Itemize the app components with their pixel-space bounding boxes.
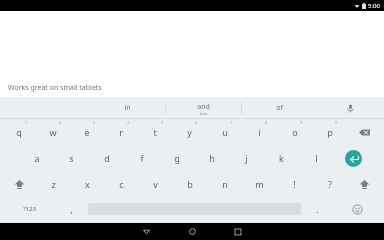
staticText: s <box>69 152 74 164</box>
button[interactable]: Shift <box>2 171 36 197</box>
button[interactable]: f <box>124 145 159 171</box>
button[interactable]: and <box>166 97 241 119</box>
button[interactable]: w <box>36 119 70 145</box>
button[interactable]: y <box>172 119 207 145</box>
staticText: 4 <box>127 120 130 125</box>
staticText: f <box>140 152 144 164</box>
button[interactable]: o <box>277 119 312 145</box>
staticText: y <box>187 126 192 138</box>
staticText: t <box>153 126 157 138</box>
button[interactable]: u <box>207 119 242 145</box>
staticText: w <box>49 126 57 138</box>
button[interactable]: r <box>104 119 138 145</box>
button[interactable]: x <box>70 171 104 197</box>
button[interactable]: e <box>70 119 104 145</box>
button[interactable]: of <box>242 97 317 119</box>
staticText: u <box>222 126 228 138</box>
staticText: a <box>34 152 40 164</box>
button[interactable]: Home <box>177 223 207 240</box>
staticText: , <box>70 203 73 215</box>
button[interactable]: d <box>89 145 124 171</box>
button[interactable]: Back <box>131 223 161 240</box>
button[interactable]: Shift <box>347 171 382 197</box>
button[interactable]: ! <box>277 171 312 197</box>
staticText: i <box>258 126 261 138</box>
button[interactable]: Recents <box>223 223 253 240</box>
staticText: 2 <box>59 120 62 125</box>
staticText: x <box>85 178 90 190</box>
button[interactable]: z <box>36 171 70 197</box>
button[interactable]: . <box>301 197 334 221</box>
button[interactable]: ?123 <box>4 197 55 221</box>
staticText: of <box>276 103 283 113</box>
button[interactable]: Enter <box>334 145 372 171</box>
button[interactable]: c <box>104 171 138 197</box>
button[interactable]: i <box>242 119 277 145</box>
staticText: 7 <box>230 120 233 125</box>
button[interactable]: p <box>312 119 347 145</box>
button[interactable]: t <box>138 119 172 145</box>
staticText: . <box>316 203 319 215</box>
staticText: 0 <box>335 120 338 125</box>
staticText: d <box>104 152 110 164</box>
staticText: b <box>187 178 193 190</box>
button[interactable]: n <box>207 171 242 197</box>
staticText: n <box>222 178 228 190</box>
staticText: ?123 <box>23 205 36 213</box>
staticText: l <box>315 152 318 164</box>
staticText: in <box>124 103 131 113</box>
staticText: m <box>255 178 264 190</box>
button[interactable]: Backspace <box>347 119 382 145</box>
button[interactable]: s <box>54 145 89 171</box>
button[interactable]: h <box>194 145 229 171</box>
button[interactable]: Emoji <box>334 197 380 221</box>
button[interactable]: m <box>242 171 277 197</box>
button[interactable]: g <box>159 145 194 171</box>
staticText: 8 <box>265 120 268 125</box>
staticText: r <box>119 126 123 138</box>
staticText: k <box>279 152 284 164</box>
button[interactable]: Voice input <box>317 97 384 119</box>
button[interactable]: j <box>229 145 264 171</box>
staticText: 9 <box>300 120 303 125</box>
staticText: 5 <box>161 120 164 125</box>
button[interactable]: q <box>2 119 36 145</box>
staticText: Works great on small tablets <box>8 83 102 93</box>
button[interactable]: a <box>19 145 54 171</box>
button[interactable]: b <box>172 171 207 197</box>
staticText: q <box>16 126 22 138</box>
staticText: and <box>197 102 210 112</box>
staticText: 5:00 <box>368 2 380 10</box>
button[interactable]: l <box>299 145 334 171</box>
staticText: j <box>245 152 248 164</box>
staticText: p <box>327 126 333 138</box>
staticText: c <box>119 178 124 190</box>
button[interactable]: , <box>55 197 88 221</box>
staticText: z <box>51 178 56 190</box>
staticText: o <box>292 126 298 138</box>
staticText: v <box>153 178 158 190</box>
button[interactable]: k <box>264 145 299 171</box>
staticText: 3 <box>93 120 96 125</box>
button[interactable]: in <box>90 97 165 119</box>
staticText: ? <box>328 178 332 190</box>
staticText: ! <box>293 178 296 190</box>
staticText: 1 <box>25 120 28 125</box>
staticText: h <box>209 152 215 164</box>
staticText: e <box>84 126 90 138</box>
button[interactable]: v <box>138 171 172 197</box>
button[interactable]: ? <box>312 171 347 197</box>
staticText: g <box>174 152 180 164</box>
staticText: 6 <box>195 120 198 125</box>
